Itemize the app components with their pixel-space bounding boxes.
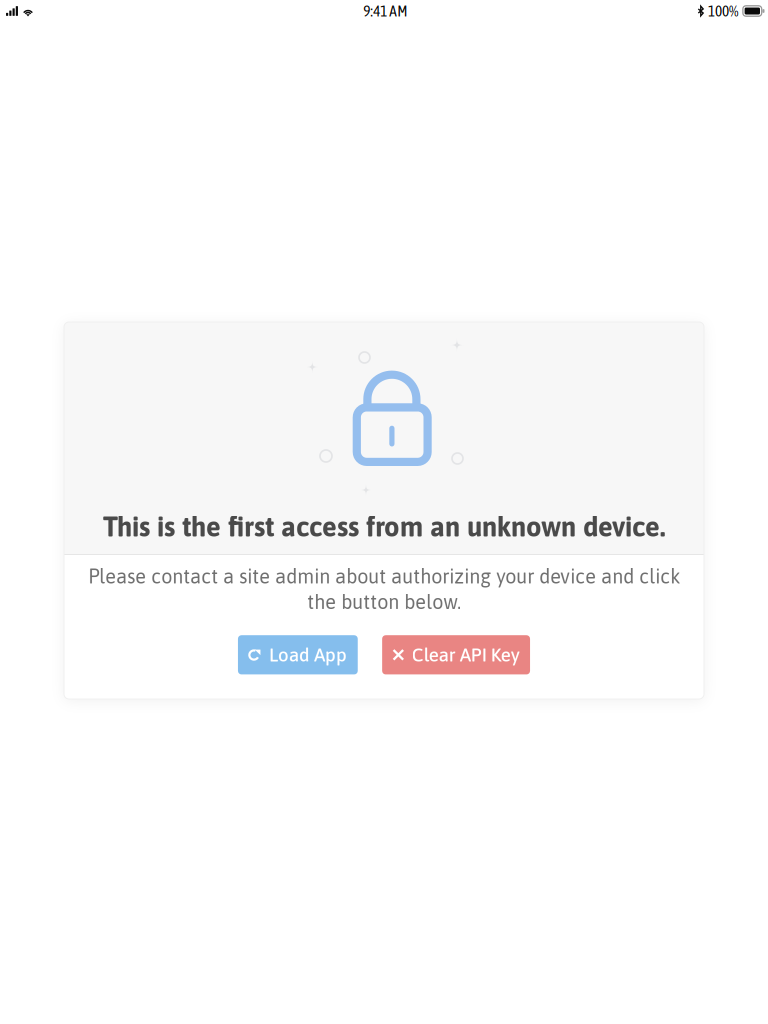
staticText: Clear API Key [412, 644, 520, 665]
staticText: 100% [708, 2, 739, 20]
staticText: 9:41 AM [363, 2, 407, 20]
staticText: Please contact a site admin about author… [88, 565, 680, 613]
button[interactable]: Clear API Key [382, 635, 530, 674]
staticText: This is the first access from an unknown… [103, 511, 665, 542]
button[interactable]: Load App [238, 635, 358, 674]
staticText: Load App [269, 644, 347, 665]
